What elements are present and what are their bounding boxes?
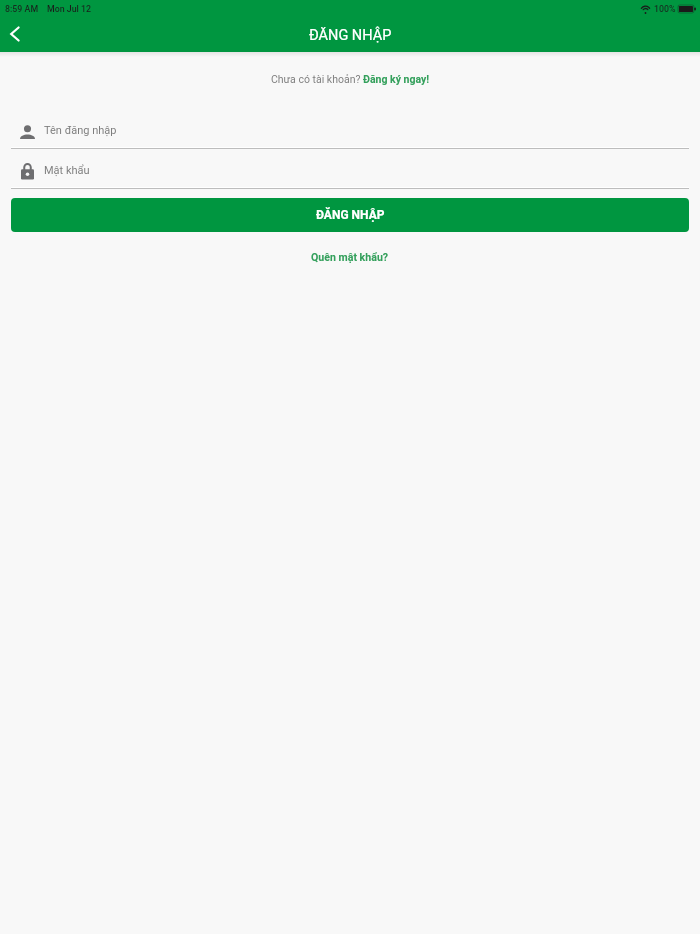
button[interactable]: Quên mật khẩu? xyxy=(311,251,389,263)
staticText: Mon Jul 12 xyxy=(47,4,92,14)
staticText: ĐĂNG NHẬP xyxy=(316,208,385,222)
button[interactable]: Back xyxy=(0,18,34,52)
staticText: Tên đăng nhập xyxy=(44,124,117,137)
staticText: 8:59 AM xyxy=(5,4,39,14)
button[interactable]: ĐĂNG NHẬP xyxy=(11,198,689,232)
staticText: Chưa có tài khoản? xyxy=(271,73,363,85)
staticText: ĐĂNG NHẬP xyxy=(309,27,392,44)
staticText: Đăng ký ngay! xyxy=(363,73,430,85)
staticText: 100% xyxy=(654,4,676,14)
button[interactable]: Đăng ký ngay! xyxy=(363,73,430,85)
button[interactable]: Tên đăng nhập xyxy=(11,113,689,145)
button[interactable]: Mật khẩu xyxy=(11,153,689,185)
staticText: Mật khẩu xyxy=(44,164,90,177)
staticText: Quên mật khẩu? xyxy=(311,251,389,263)
